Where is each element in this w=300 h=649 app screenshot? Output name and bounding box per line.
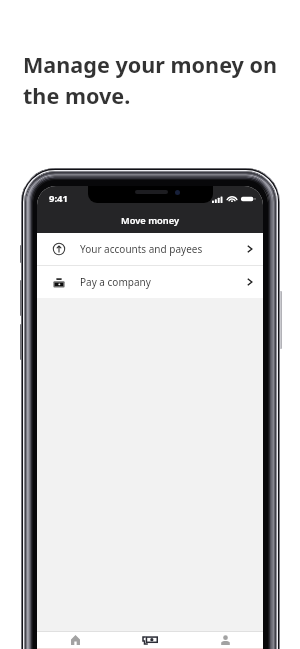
button[interactable]: Move money [113, 632, 188, 648]
button[interactable]: Your accounts and payees [37, 233, 263, 265]
staticText: Manage your money on the move. [23, 50, 285, 111]
button[interactable]: Pay a company [37, 266, 263, 298]
button[interactable]: Profile [188, 632, 263, 648]
staticText: Move money [121, 214, 180, 227]
staticText: Pay a company [80, 275, 151, 289]
staticText: 9:41 [49, 192, 68, 205]
staticText: Your accounts and payees [80, 242, 203, 256]
button[interactable]: Home [37, 632, 113, 648]
